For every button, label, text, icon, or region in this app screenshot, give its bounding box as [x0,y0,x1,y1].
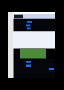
button[interactable]: Web page [8,12,55,78]
